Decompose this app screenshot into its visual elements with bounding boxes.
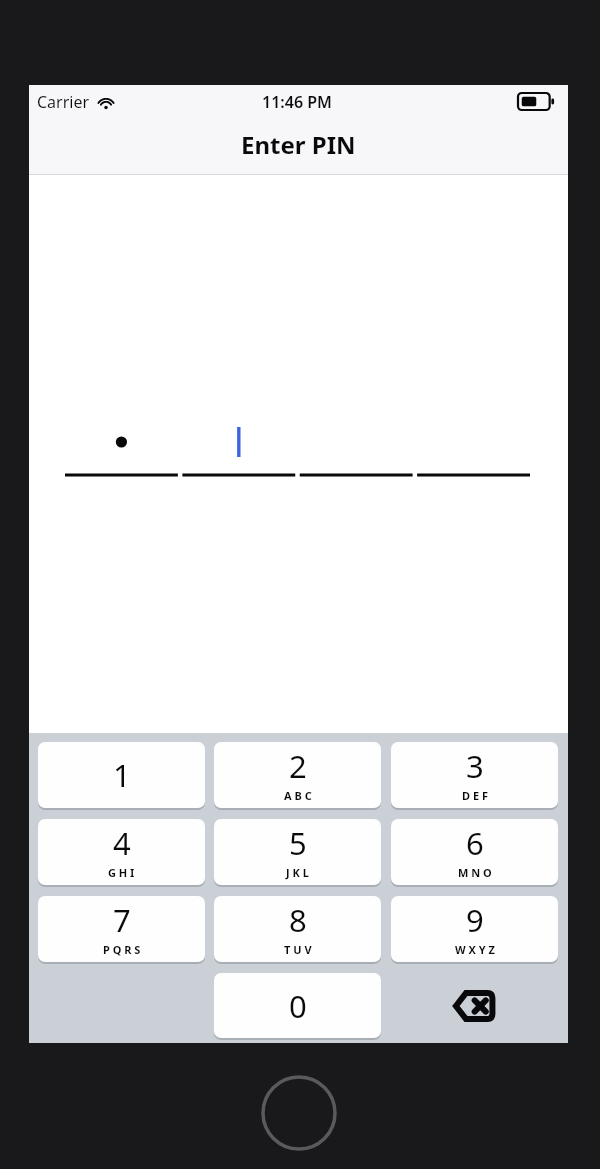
staticText: 7 bbox=[113, 899, 131, 941]
button[interactable]: 4 bbox=[38, 819, 205, 885]
button[interactable]: 2 bbox=[214, 742, 381, 808]
button[interactable]: 8 bbox=[214, 896, 381, 962]
staticText: 5 bbox=[289, 822, 307, 864]
button[interactable]: 7 bbox=[38, 896, 205, 962]
staticText: D E F bbox=[462, 788, 488, 803]
staticText: J K L bbox=[286, 865, 309, 880]
staticText: 2 bbox=[289, 745, 307, 787]
staticText: 11:46 PM bbox=[262, 91, 332, 113]
staticText: A B C bbox=[284, 788, 312, 803]
staticText: T U V bbox=[284, 942, 312, 957]
button[interactable]: 5 bbox=[214, 819, 381, 885]
staticText: 8 bbox=[289, 899, 307, 941]
staticText: M N O bbox=[458, 865, 492, 880]
staticText: Enter PIN bbox=[241, 128, 356, 161]
staticText: P Q R S bbox=[103, 942, 141, 957]
staticText: 1 bbox=[113, 754, 131, 796]
button[interactable]: 0 bbox=[214, 973, 381, 1038]
staticText: Carrier bbox=[37, 91, 90, 113]
button[interactable]: Delete bbox=[391, 973, 558, 1038]
button[interactable]: 6 bbox=[391, 819, 558, 885]
staticText: 9 bbox=[466, 899, 484, 941]
staticText: W X Y Z bbox=[455, 942, 495, 957]
staticText: 3 bbox=[466, 745, 484, 787]
button[interactable]: 9 bbox=[391, 896, 558, 962]
staticText: G H I bbox=[108, 865, 135, 880]
staticText: 6 bbox=[466, 822, 484, 864]
button[interactable]: 3 bbox=[391, 742, 558, 808]
staticText: 0 bbox=[289, 985, 307, 1027]
staticText: 4 bbox=[113, 822, 131, 864]
button[interactable]: 1 bbox=[38, 742, 205, 808]
